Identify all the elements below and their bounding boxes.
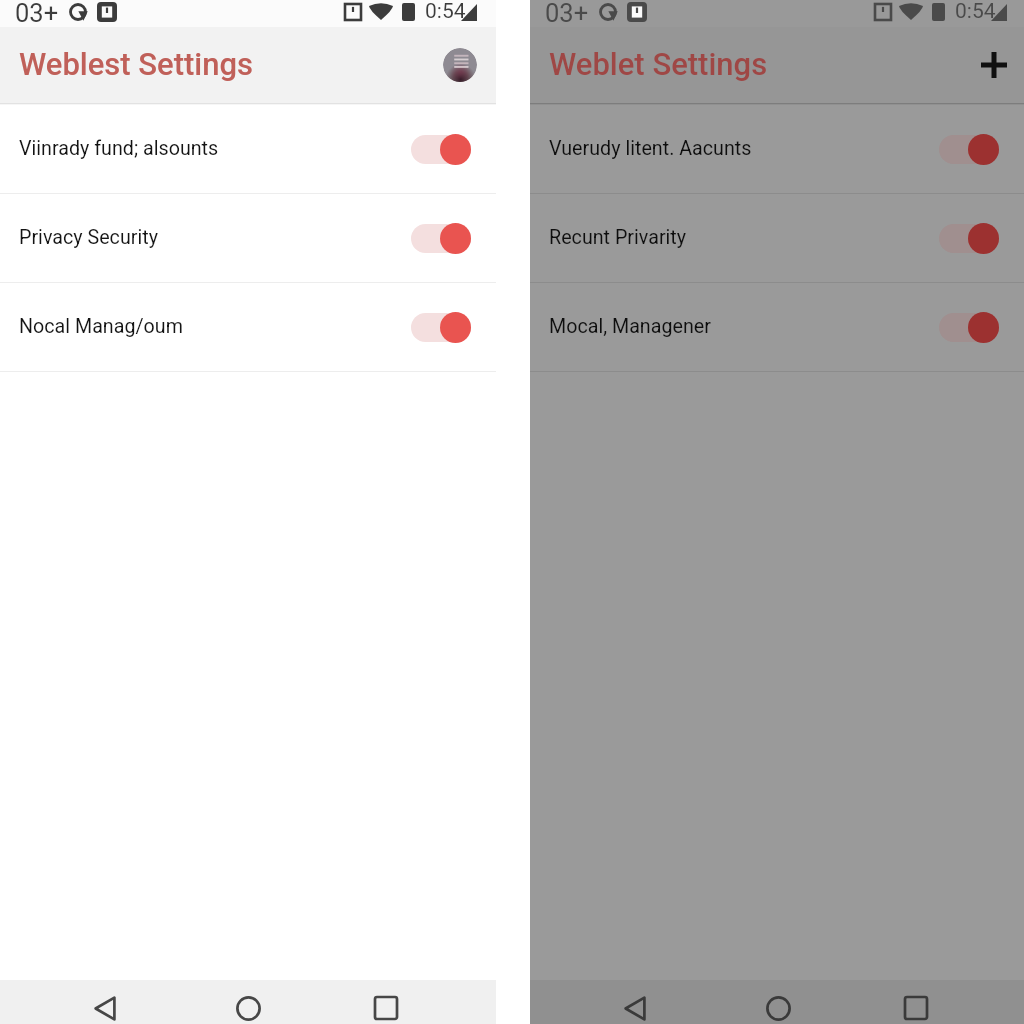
button[interactable]: Mocal, Managener bbox=[530, 283, 1024, 371]
button[interactable]: Toggle Vuerudy litent. Aacunts bbox=[939, 134, 999, 165]
button[interactable]: Recunt Privarity bbox=[530, 194, 1024, 282]
button[interactable]: Toggle Mocal, Managener bbox=[939, 312, 999, 343]
staticText: 03+ bbox=[545, 0, 589, 25]
button[interactable]: Toggle Recunt Privarity bbox=[939, 223, 999, 254]
button[interactable]: Back bbox=[613, 980, 657, 1024]
staticText: Recunt Privarity bbox=[549, 226, 687, 249]
staticText: 03+ bbox=[15, 0, 59, 25]
button[interactable]: Add bbox=[970, 41, 1018, 89]
staticText: Weblest Settings bbox=[19, 46, 254, 82]
button[interactable]: Home bbox=[226, 980, 270, 1024]
staticText: 0:54 bbox=[955, 0, 996, 24]
staticText: Viinrady fund; alsounts bbox=[19, 137, 219, 160]
button[interactable]: Nocal Manag/oum bbox=[0, 283, 496, 371]
staticText: Weblet Settings bbox=[549, 46, 768, 82]
button[interactable]: Recents bbox=[894, 980, 938, 1024]
staticText: Privacy Security bbox=[19, 226, 158, 249]
button[interactable]: Viinrady fund; alsounts bbox=[0, 105, 496, 193]
button[interactable]: Home bbox=[756, 980, 800, 1024]
staticText: Vuerudy litent. Aacunts bbox=[549, 137, 752, 160]
button[interactable]: Toggle Nocal Manag/oum bbox=[411, 312, 471, 343]
button[interactable]: Back bbox=[83, 980, 127, 1024]
button[interactable]: Profile bbox=[443, 48, 477, 82]
button[interactable]: Recents bbox=[364, 980, 408, 1024]
staticText: Nocal Manag/oum bbox=[19, 315, 183, 338]
staticText: 0:54 bbox=[425, 0, 466, 24]
button[interactable]: Privacy Security bbox=[0, 194, 496, 282]
staticText: Mocal, Managener bbox=[549, 315, 711, 338]
button[interactable]: Toggle Viinrady fund; alsounts bbox=[411, 134, 471, 165]
button[interactable]: Vuerudy litent. Aacunts bbox=[530, 105, 1024, 193]
button[interactable]: Toggle Privacy Security bbox=[411, 223, 471, 254]
